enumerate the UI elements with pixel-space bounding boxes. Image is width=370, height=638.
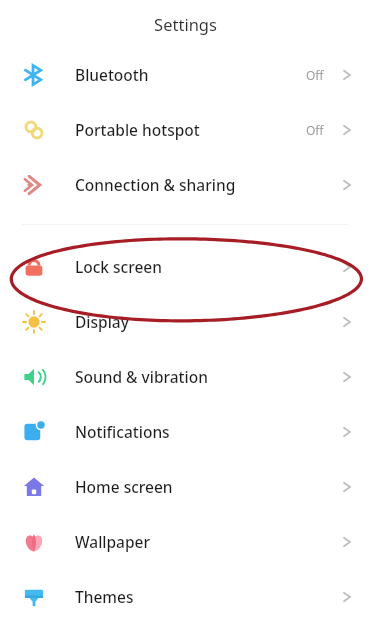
staticText: Bluetooth — [75, 64, 306, 85]
button[interactable]: Display — [0, 294, 370, 349]
button[interactable]: Portable hotspot — [0, 102, 370, 157]
button[interactable]: Themes — [0, 569, 370, 624]
button[interactable]: Lock screen — [0, 239, 370, 294]
button[interactable]: Sound & vibration — [0, 349, 370, 404]
staticText: Portable hotspot — [75, 119, 306, 140]
staticText: Settings — [154, 13, 217, 35]
button[interactable]: Connection & sharing — [0, 157, 370, 212]
staticText: Notifications — [75, 421, 338, 442]
button[interactable]: Home screen — [0, 459, 370, 514]
staticText: Connection & sharing — [75, 174, 338, 195]
button[interactable]: Bluetooth — [0, 47, 370, 102]
staticText: Sound & vibration — [75, 366, 338, 387]
staticText: Off — [306, 67, 324, 83]
staticText: Wallpaper — [75, 531, 338, 552]
staticText: Themes — [75, 586, 338, 607]
staticText: Home screen — [75, 476, 338, 497]
staticText: Display — [75, 311, 338, 332]
button[interactable]: Wallpaper — [0, 514, 370, 569]
staticText: Off — [306, 122, 324, 138]
button[interactable]: Notifications — [0, 404, 370, 459]
staticText: Lock screen — [75, 256, 338, 277]
